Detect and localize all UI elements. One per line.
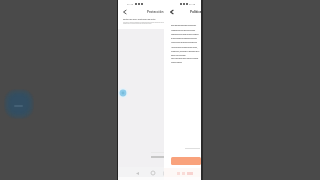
staticText: Consulta y acepta la política de privaci… (123, 21, 164, 25)
button[interactable]: Back (133, 169, 141, 177)
button[interactable]: Back (167, 7, 177, 17)
staticText: El responsable del tratamiento podrá con… (171, 37, 202, 43)
staticText: Política (190, 9, 202, 14)
staticText: Este apartado describe la protección (171, 24, 202, 27)
staticText: Protección de datos (147, 10, 178, 14)
button[interactable] (171, 157, 201, 165)
button[interactable]: Highlight (4, 89, 34, 119)
staticText: Política de uso y protección de datos (123, 18, 156, 21)
staticText: Cualquiera de los datos personales facil… (171, 29, 202, 35)
staticText: Usted es titular del derecho de acceso, … (171, 46, 202, 56)
staticText: 21:15 (127, 2, 134, 5)
staticText: 21:15 (189, 2, 196, 5)
button[interactable]: Back (120, 7, 130, 17)
button[interactable]: Home (149, 169, 157, 177)
staticText: Para más información puede consultar nue… (171, 57, 202, 63)
button[interactable]: Recents (161, 169, 169, 177)
